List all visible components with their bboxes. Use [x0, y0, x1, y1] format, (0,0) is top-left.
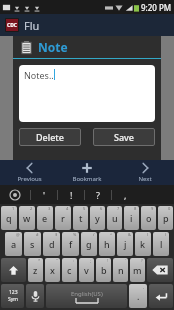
button[interactable]: Bookmark — [58, 160, 116, 185]
staticText: , — [143, 284, 145, 289]
staticText: c — [67, 264, 72, 276]
staticText: ' — [43, 189, 46, 201]
staticText: y — [95, 212, 100, 224]
button[interactable]: v — [79, 258, 94, 282]
button[interactable]: h — [99, 232, 115, 256]
staticText: a — [11, 238, 17, 250]
button[interactable]: p — [158, 206, 173, 230]
button[interactable]: Previous — [0, 160, 58, 185]
staticText: p — [163, 212, 169, 224]
staticText: 9 — [151, 206, 154, 211]
staticText: & — [128, 232, 131, 237]
staticText: $ — [55, 232, 58, 237]
staticText: ! — [107, 258, 109, 263]
button[interactable]: Enter — [149, 284, 173, 308]
staticText: Previous — [17, 175, 42, 183]
staticText: : — [73, 258, 75, 263]
staticText: 9:20 PM — [141, 2, 172, 13]
staticText: Save — [114, 131, 135, 143]
button[interactable]: Symbols — [1, 284, 24, 308]
button[interactable]: f — [62, 232, 79, 256]
staticText: , — [124, 189, 127, 201]
button[interactable]: Save — [93, 128, 155, 146]
staticText: ( — [147, 232, 149, 237]
staticText: CDC — [7, 22, 18, 29]
staticText: i — [130, 212, 133, 224]
staticText: r — [61, 212, 65, 224]
button[interactable]: i — [124, 206, 139, 230]
staticText: English(US) — [71, 290, 103, 298]
button[interactable]: y — [90, 206, 105, 230]
staticText: ; — [90, 258, 92, 263]
staticText: Next — [138, 175, 152, 183]
staticText: Note — [38, 39, 68, 55]
staticText: 4 — [66, 206, 69, 211]
button[interactable]: Delete — [19, 128, 81, 146]
staticText: * — [38, 258, 41, 263]
staticText: ? — [96, 189, 100, 201]
staticText: 6 — [100, 206, 103, 211]
staticText: v — [84, 264, 89, 276]
staticText: . — [137, 290, 140, 302]
staticText: w — [23, 212, 31, 224]
staticText: z — [33, 264, 38, 276]
staticText: " — [56, 258, 58, 263]
button[interactable]: Backspace — [147, 258, 173, 282]
button[interactable]: c — [62, 258, 77, 282]
staticText: ) — [165, 232, 167, 237]
button[interactable]: o — [141, 206, 156, 230]
staticText: u — [112, 212, 118, 224]
button[interactable]: s — [24, 232, 41, 256]
button[interactable]: d — [43, 232, 60, 256]
button[interactable]: w — [19, 206, 35, 230]
staticText: ^ — [110, 232, 113, 237]
staticText: o — [146, 212, 152, 224]
button[interactable]: b — [96, 258, 111, 282]
button[interactable]: Notes.. — [19, 65, 155, 122]
staticText: 1 — [12, 206, 15, 211]
button[interactable]: q — [1, 206, 17, 230]
button[interactable]: x — [45, 258, 60, 282]
button[interactable]: n — [113, 258, 128, 282]
staticText: h — [104, 238, 110, 250]
staticText: % — [73, 232, 77, 237]
staticText: Delete — [36, 131, 64, 143]
button[interactable]: l — [153, 232, 169, 256]
staticText: / — [93, 232, 95, 237]
button[interactable]: ' — [31, 185, 57, 204]
button[interactable]: , — [112, 185, 138, 204]
button[interactable]: z — [28, 258, 43, 282]
button[interactable]: t — [73, 206, 88, 230]
button[interactable]: Next — [116, 160, 174, 185]
staticText: g — [86, 238, 92, 250]
staticText: 3 — [48, 206, 51, 211]
button[interactable]: ! — [58, 185, 84, 204]
button[interactable]: e — [37, 206, 53, 230]
staticText: b — [101, 264, 107, 276]
staticText: 8 — [134, 206, 137, 211]
button[interactable]: j — [117, 232, 133, 256]
button[interactable]: ? — [85, 185, 111, 204]
button[interactable]: r — [55, 206, 71, 230]
staticText: 0 — [168, 206, 171, 211]
button[interactable]: g — [81, 232, 97, 256]
staticText: ! — [70, 189, 73, 201]
button[interactable]: Emoji — [0, 185, 30, 204]
staticText: ' — [125, 258, 126, 263]
button[interactable]: m — [130, 258, 145, 282]
button[interactable]: u — [107, 206, 122, 230]
button[interactable]: Shift — [1, 258, 26, 282]
button[interactable]: k — [135, 232, 151, 256]
staticText: x — [50, 264, 55, 276]
button[interactable]: . — [129, 284, 147, 308]
staticText: Flu — [24, 18, 40, 33]
staticText: f — [69, 238, 73, 250]
button[interactable]: English(US) — [46, 284, 127, 308]
staticText: ? — [141, 258, 143, 263]
button[interactable]: Voice input — [26, 284, 44, 308]
staticText: 123 — [9, 289, 18, 296]
staticText: 2 — [30, 206, 33, 211]
button[interactable]: a — [5, 232, 22, 256]
button[interactable]: CDC logo — [5, 18, 19, 32]
staticText: # — [36, 232, 39, 237]
